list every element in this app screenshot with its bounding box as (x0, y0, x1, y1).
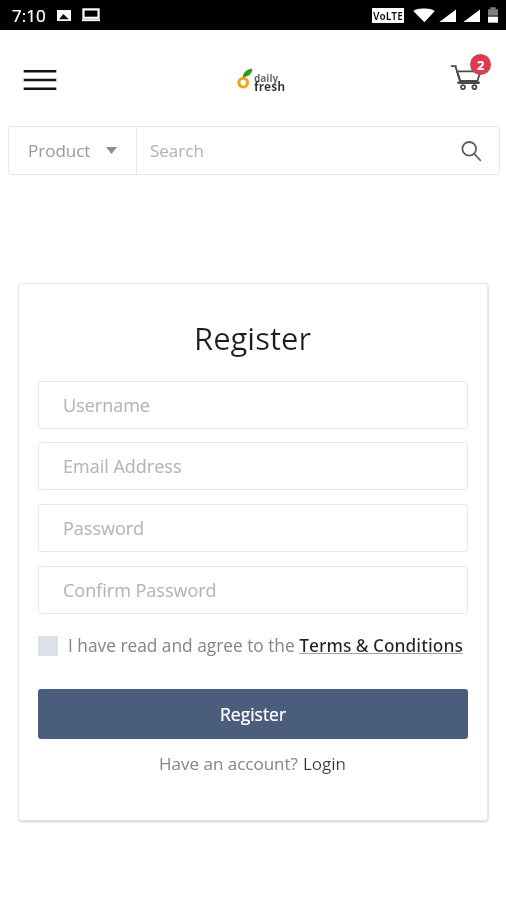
staticText: Confirm Password (63, 578, 217, 603)
staticText: Password (63, 516, 145, 541)
button[interactable]: I have read and agree to the Terms & Con… (38, 631, 463, 661)
staticText: Login (303, 752, 347, 775)
staticText: fresh (254, 78, 286, 94)
button[interactable]: Menu (15, 61, 65, 99)
button[interactable]: Confirm Password (38, 566, 468, 614)
staticText: Email Address (63, 454, 182, 479)
staticText: 2 (477, 56, 485, 74)
button[interactable]: Username (38, 381, 468, 429)
other: Search (460, 140, 482, 162)
button[interactable]: Product (8, 126, 136, 175)
staticText: Username (63, 393, 150, 418)
staticText: Register (194, 317, 312, 359)
button[interactable]: Have an account? (159, 752, 347, 775)
button[interactable]: Email Address (38, 442, 468, 490)
staticText: Register (220, 702, 287, 726)
staticText: Product (28, 139, 91, 162)
button[interactable]: Shopping cart (445, 54, 493, 96)
staticText: I have read and agree to the Terms & Con… (68, 634, 463, 658)
staticText: 7:10 (12, 4, 46, 27)
staticText: Search (150, 139, 204, 162)
staticText: VoLTE (373, 9, 403, 23)
button[interactable]: Register (38, 689, 468, 739)
button[interactable]: Password (38, 504, 468, 552)
button[interactable]: Search (137, 126, 500, 175)
staticText: daily (254, 71, 279, 85)
staticText: Have an account? (159, 752, 303, 775)
button[interactable]: Daily Fresh home (232, 64, 286, 92)
